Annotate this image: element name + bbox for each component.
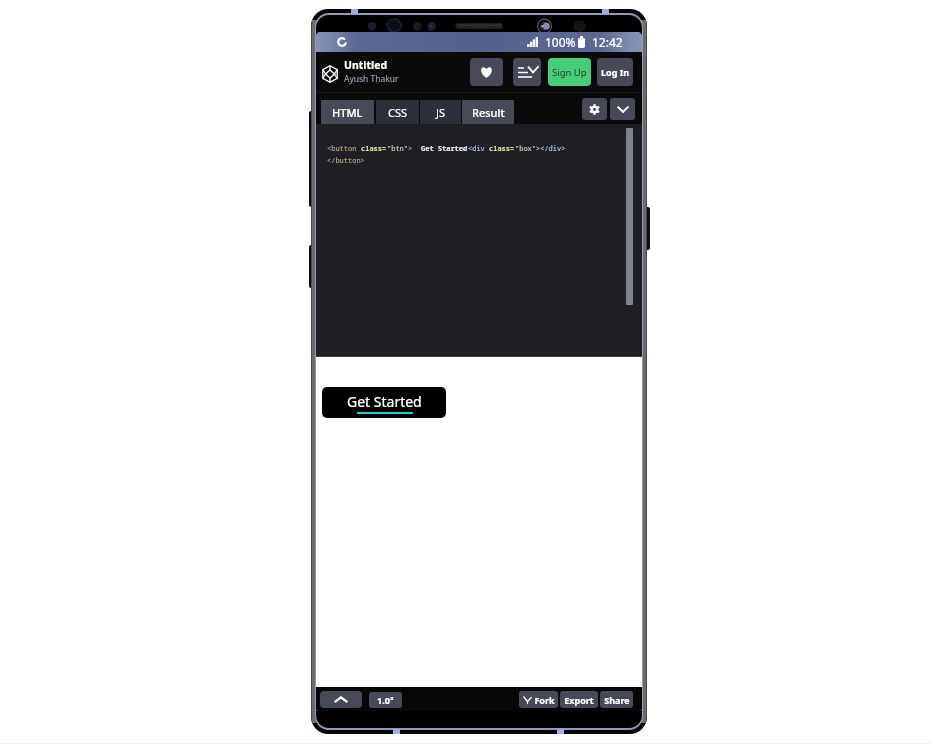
button[interactable]: Settings — [582, 98, 607, 120]
staticText: Untitled — [344, 58, 388, 72]
staticText: > — [408, 144, 421, 154]
button[interactable]: HTML — [321, 100, 374, 125]
staticText: Share — [604, 694, 630, 706]
staticText: 100% — [545, 34, 576, 50]
staticText: Export — [564, 694, 594, 706]
staticText: Result — [472, 105, 505, 120]
staticText: "box" — [515, 144, 536, 154]
staticText: </button> — [327, 156, 365, 166]
staticText: JS — [436, 105, 446, 120]
staticText: class= — [361, 144, 387, 154]
button[interactable]: CSS — [376, 100, 419, 125]
staticText: Ayush Thakur — [344, 73, 399, 85]
staticText: class= — [489, 144, 515, 154]
button[interactable]: Get Started — [322, 387, 446, 418]
button[interactable]: Export — [560, 691, 598, 708]
staticText: Get Started — [421, 144, 468, 154]
staticText: 1.0 — [377, 694, 390, 706]
staticText: x — [390, 694, 394, 702]
button[interactable]: Views — [513, 58, 541, 86]
button[interactable]: Like — [470, 58, 503, 86]
staticText: Get Started — [347, 392, 422, 411]
button[interactable]: Sign Up — [548, 58, 591, 86]
button[interactable]: Fork — [519, 691, 558, 708]
staticText: 12:42 — [592, 34, 623, 50]
staticText: <div — [468, 144, 489, 154]
button[interactable]: Result — [462, 100, 514, 125]
staticText: HTML — [332, 105, 363, 120]
staticText: "btn" — [387, 144, 408, 154]
staticText: CSS — [388, 105, 408, 120]
button[interactable]: Log In — [597, 58, 633, 86]
staticText: Fork — [534, 694, 555, 706]
button[interactable]: Collapse — [320, 691, 362, 708]
button[interactable]: CodePen — [321, 65, 339, 83]
staticText: <button — [327, 144, 361, 154]
button[interactable]: Expand — [610, 98, 635, 120]
staticText: Sign Up — [552, 66, 587, 79]
button[interactable]: Share — [600, 691, 633, 708]
button[interactable]: 1.0 — [369, 692, 402, 708]
staticText: Log In — [601, 66, 630, 78]
button[interactable]: JS — [420, 100, 461, 125]
staticText: ></div> — [536, 144, 566, 154]
